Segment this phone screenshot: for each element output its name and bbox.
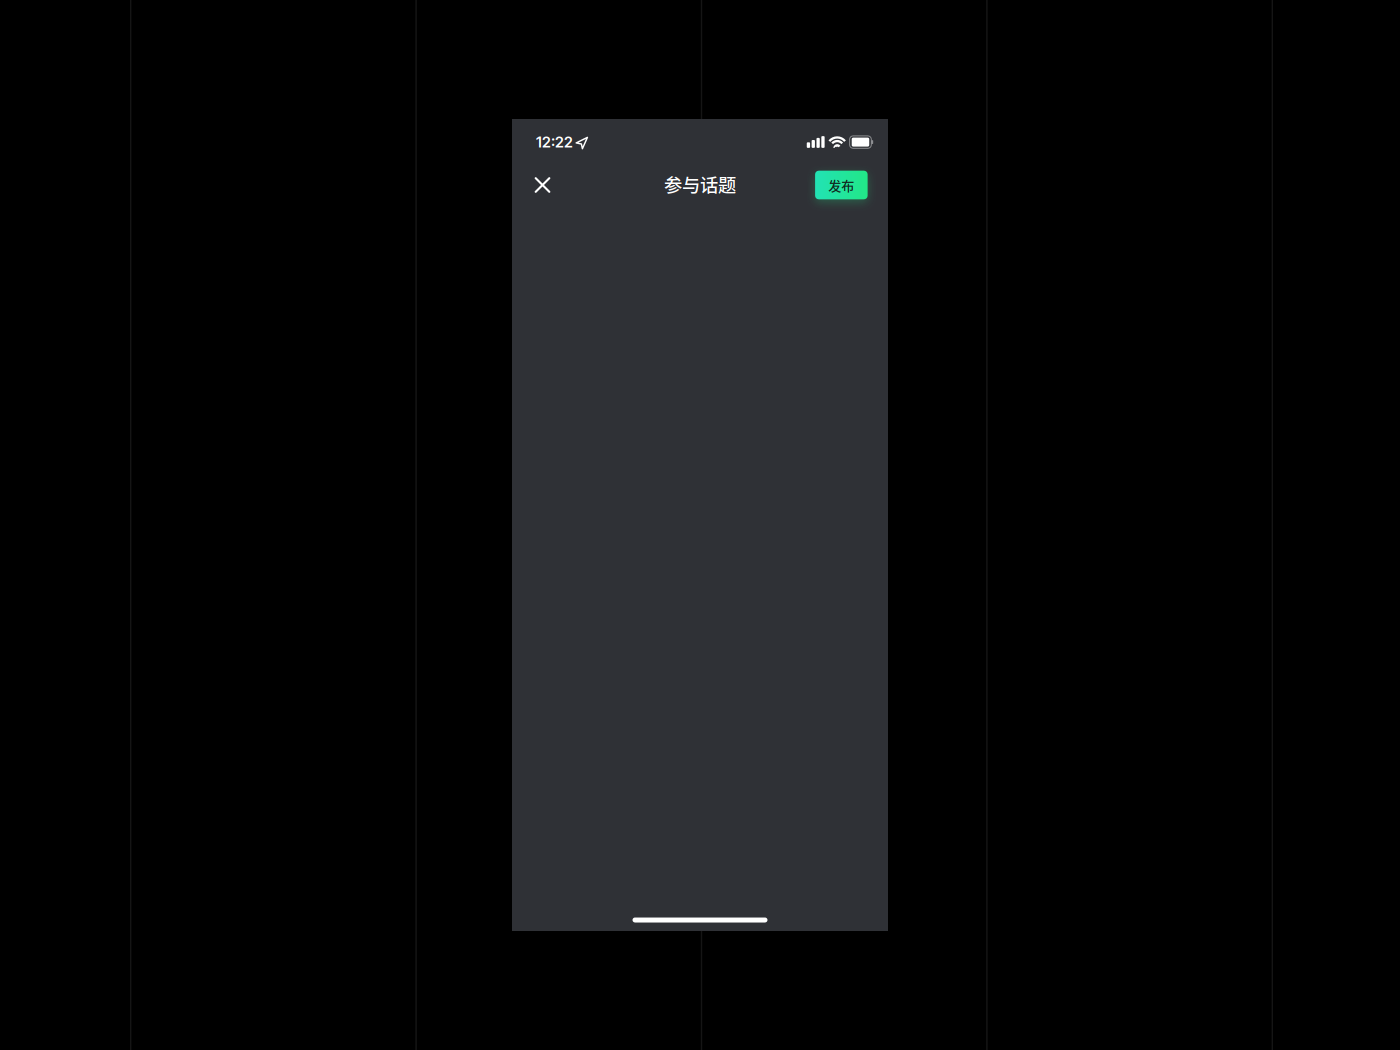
staticText: 12:22: [536, 133, 573, 151]
button[interactable]: 发布: [815, 171, 868, 199]
staticText: 参与话题: [664, 171, 736, 197]
staticText: 发布: [828, 175, 854, 194]
button[interactable]: Close: [535, 163, 569, 207]
